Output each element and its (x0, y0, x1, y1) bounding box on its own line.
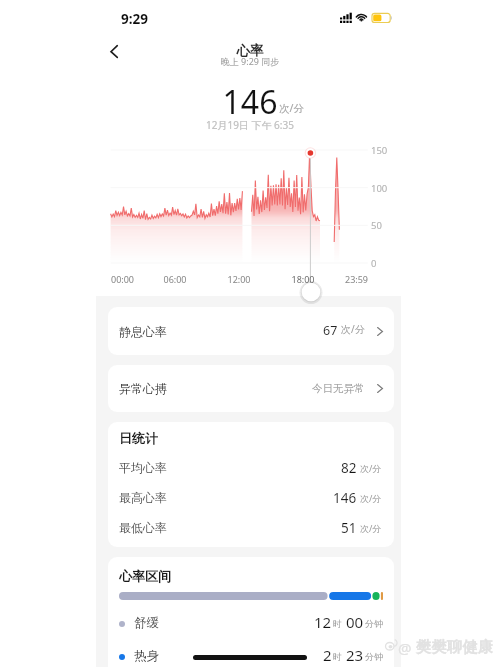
staticText: 最高心率 (119, 490, 167, 505)
staticText: 心率区间 (119, 568, 171, 584)
staticText: 82 (341, 459, 357, 477)
staticText: 9:29 (121, 10, 148, 28)
staticText: 舒缓 (134, 615, 159, 631)
staticText: 2 (323, 645, 332, 665)
button[interactable]: 静息心率 (108, 307, 394, 355)
staticText: 18:00 (290, 273, 316, 285)
staticText: 06:00 (162, 273, 188, 285)
staticText: 50 (371, 219, 382, 232)
staticText: 时 (333, 651, 342, 662)
staticText: 12:00 (226, 273, 252, 285)
staticText: 12 (314, 612, 332, 632)
staticText: 23 (346, 645, 364, 665)
staticText: 23:59 (341, 273, 368, 285)
staticText: 0 (371, 257, 377, 270)
staticText: 心率 (150, 42, 350, 59)
staticText: 12月19日 下午 6:35 (150, 118, 350, 132)
staticText: 次/分 (341, 322, 365, 336)
staticText: 平均心率 (119, 460, 167, 475)
staticText: 樊樊聊健康 (416, 638, 494, 657)
staticText: 次/分 (360, 522, 382, 534)
button[interactable]: 异常心搏 (108, 365, 394, 412)
staticText: @ (398, 638, 412, 658)
staticText: 最低心率 (119, 520, 167, 535)
staticText: 日统计 (119, 430, 158, 446)
staticText: 分钟 (365, 618, 383, 629)
staticText: 次/分 (360, 462, 382, 474)
staticText: 00:00 (111, 273, 135, 285)
staticText: 次/分 (360, 492, 382, 504)
button[interactable]: Back (99, 37, 127, 65)
staticText: 时 (333, 618, 342, 629)
staticText: 100 (371, 182, 388, 195)
staticText: 51 (341, 519, 357, 537)
staticText: 次/分 (279, 101, 304, 115)
staticText: 异常心搏 (119, 381, 167, 396)
staticText: 146 (150, 80, 350, 124)
staticText: 146 (333, 489, 357, 507)
staticText: 晚上 9:29 同步 (150, 55, 350, 67)
staticText: 150 (371, 144, 388, 157)
staticText: 今日无异常 (312, 382, 365, 395)
staticText: 分钟 (365, 651, 383, 662)
staticText: 00 (346, 612, 364, 632)
staticText: 静息心率 (119, 324, 167, 339)
staticText: 67 (323, 322, 338, 339)
staticText: 热身 (134, 648, 159, 664)
